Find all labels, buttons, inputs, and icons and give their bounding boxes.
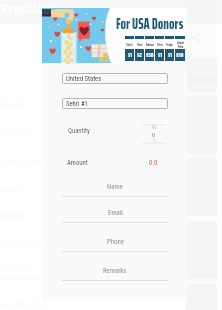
staticText: Email (108, 209, 123, 217)
staticText: Phone (107, 238, 124, 246)
button[interactable]: Name (62, 178, 168, 197)
staticText: $50 (176, 51, 184, 60)
staticText: $1 (158, 51, 162, 60)
staticText: 0 (152, 131, 156, 138)
staticText: Fidya (166, 42, 173, 47)
staticText: $1 (168, 51, 172, 60)
staticText: 40 (152, 125, 157, 130)
staticText: Amount (67, 159, 88, 167)
button[interactable]: 40 (142, 122, 166, 145)
staticText: Fitra (157, 42, 163, 47)
staticText: United States (66, 75, 102, 83)
staticText: $2 (137, 51, 142, 60)
other: Share (191, 33, 201, 43)
staticText: Name (107, 183, 123, 191)
button[interactable]: Email (62, 204, 168, 223)
staticText: 0.0 (149, 159, 158, 167)
staticText: For USA Donors (116, 13, 184, 36)
button[interactable]: Remarks (62, 262, 168, 281)
staticText: Zakat Fitra (177, 40, 184, 49)
staticText: Quantity (68, 127, 90, 135)
staticText: 1 (153, 138, 156, 143)
button[interactable]: United States (62, 73, 168, 84)
button[interactable]: Phone (62, 233, 168, 252)
staticText: Sehri (126, 42, 133, 47)
staticText: Iftar (137, 42, 143, 47)
staticText: $50 (146, 51, 154, 60)
staticText: Ration (146, 42, 154, 47)
staticText: Sehri #1 (66, 100, 88, 108)
staticText: Remarks (103, 267, 127, 275)
staticText: $1 (128, 51, 132, 60)
staticText: President (1, 1, 56, 17)
button[interactable]: Sehri #1 (62, 98, 168, 109)
